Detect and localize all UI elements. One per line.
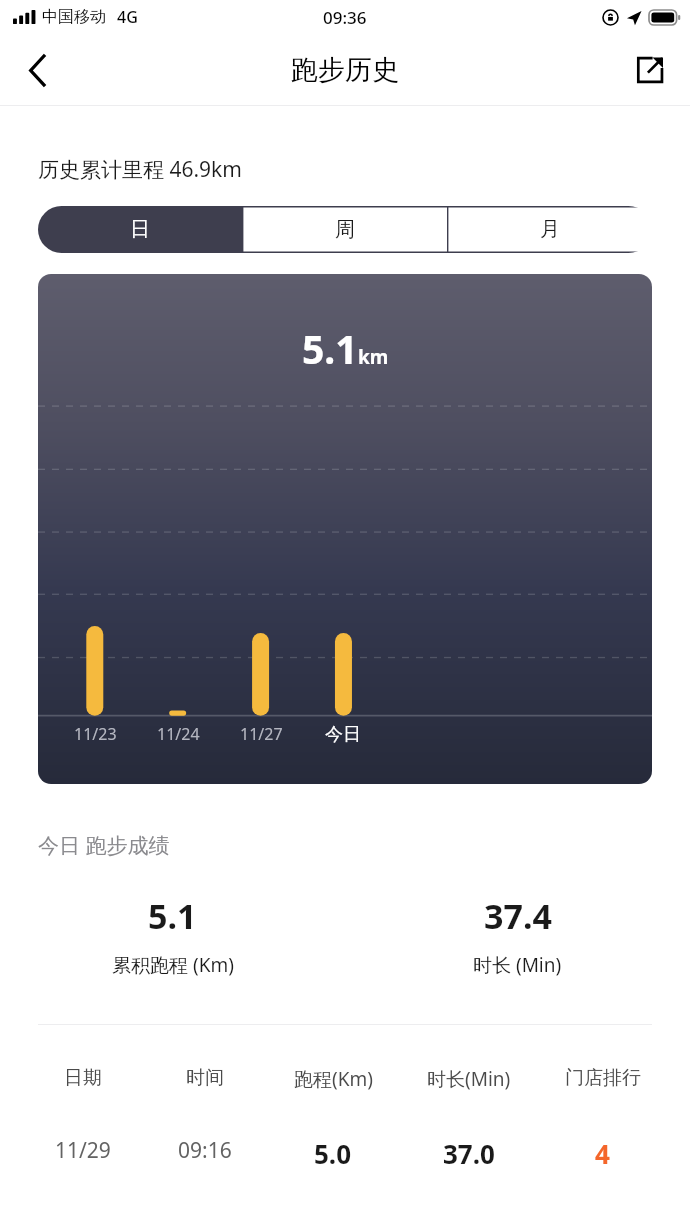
staticText: 09:16	[178, 1136, 232, 1165]
staticText: 历史累计里程 46.9km	[38, 155, 242, 184]
staticText: 今日 跑步成绩	[38, 831, 170, 860]
staticText: 5.1	[148, 893, 197, 939]
staticText: 时间	[186, 1066, 224, 1090]
button[interactable]: 月	[447, 206, 652, 253]
staticText: 5.0	[314, 1136, 352, 1171]
staticText: 门店排行	[565, 1066, 641, 1090]
staticText: 中国移动	[42, 7, 106, 27]
staticText: 11/23	[74, 723, 117, 745]
staticText: 累积跑程 (Km)	[112, 952, 234, 978]
button[interactable]: Share	[624, 44, 676, 96]
staticText: 5.1	[302, 322, 358, 375]
staticText: 时长 (Min)	[473, 952, 562, 978]
staticText: 周	[335, 217, 355, 242]
staticText: 月	[540, 217, 560, 242]
staticText: km	[358, 344, 389, 370]
staticText: 日期	[64, 1066, 102, 1090]
staticText: 4G	[117, 6, 138, 28]
staticText: 时长(Min)	[427, 1066, 511, 1092]
button[interactable]: Back	[8, 41, 66, 99]
staticText: 11/27	[240, 723, 283, 745]
button[interactable]: 日	[38, 206, 242, 253]
staticText: 今日	[325, 723, 361, 746]
staticText: 11/29	[55, 1136, 111, 1165]
staticText: 跑步历史	[291, 53, 399, 87]
staticText: 11/24	[157, 723, 200, 745]
button[interactable]: 周	[242, 206, 447, 253]
button[interactable]: 11/29	[22, 1136, 668, 1171]
staticText: 跑程(Km)	[294, 1066, 373, 1092]
staticText: 37.0	[443, 1136, 495, 1171]
staticText: 日	[130, 217, 150, 242]
staticText: 4	[595, 1136, 610, 1171]
staticText: 37.4	[484, 893, 552, 939]
staticText: 09:36	[323, 6, 367, 29]
